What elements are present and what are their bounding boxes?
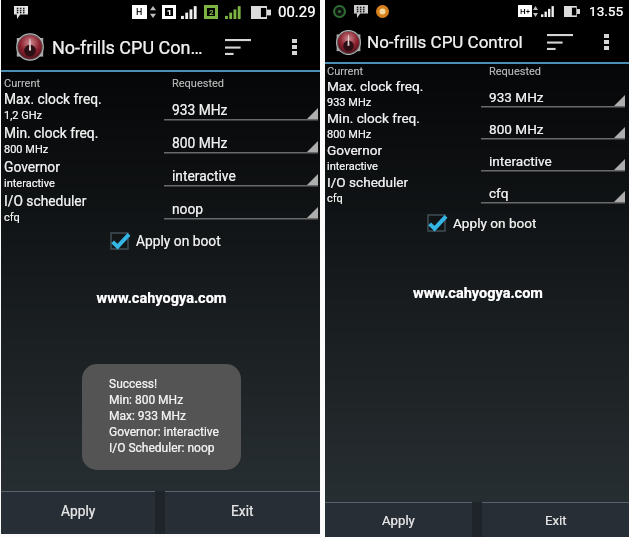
staticText: 13.55 xyxy=(589,3,624,19)
button[interactable]: Sort xyxy=(534,22,586,62)
staticText: Current xyxy=(4,77,41,90)
staticText: interactive xyxy=(172,168,236,184)
button[interactable]: Apply on boot xyxy=(6,230,325,252)
staticText: Governor xyxy=(327,142,383,158)
button[interactable]: More options xyxy=(276,24,312,70)
staticText: No-frills CPU Con… xyxy=(52,37,203,58)
staticText: cfq xyxy=(489,185,509,201)
staticText: Max. clock freq. xyxy=(4,91,102,107)
button[interactable]: Apply xyxy=(1,491,155,534)
staticText: noop xyxy=(172,201,204,217)
staticText: I/O scheduler xyxy=(327,174,409,190)
staticText: 1 xyxy=(167,8,172,16)
staticText: Requested xyxy=(172,77,225,90)
button[interactable]: 933 MHz xyxy=(164,95,318,128)
staticText: No-frills CPU Control xyxy=(367,32,523,52)
staticText: Min. clock freq. xyxy=(4,125,99,141)
staticText: 933 MHz xyxy=(327,96,372,109)
staticText: Success! xyxy=(109,377,158,391)
button[interactable]: 800 MHz xyxy=(164,128,318,161)
button[interactable]: More options xyxy=(588,22,624,62)
staticText: Governor xyxy=(4,159,60,175)
staticText: www.cahyogya.com xyxy=(326,285,629,302)
staticText: Apply on boot xyxy=(453,215,537,231)
staticText: I/O scheduler xyxy=(4,193,87,209)
staticText: Exit xyxy=(231,503,254,519)
button[interactable]: Exit xyxy=(165,491,320,534)
staticText: www.cahyogya.com xyxy=(2,290,321,307)
staticText: 800 MHz xyxy=(489,121,544,137)
staticText: cfq xyxy=(4,211,20,224)
staticText: interactive xyxy=(4,177,55,190)
staticText: Exit xyxy=(545,513,567,528)
staticText: 00.29 xyxy=(278,3,316,21)
staticText: Requested xyxy=(489,65,542,78)
staticText: Governor: interactive xyxy=(109,425,219,439)
button[interactable]: Apply xyxy=(325,502,472,537)
staticText: Current xyxy=(327,65,364,78)
button[interactable]: noop xyxy=(164,194,318,227)
staticText: H xyxy=(136,7,143,18)
staticText: Max: 933 MHz xyxy=(109,409,187,423)
button[interactable]: 800 MHz xyxy=(481,115,625,147)
button[interactable]: cfq xyxy=(481,179,625,211)
staticText: Apply xyxy=(61,503,96,519)
staticText: interactive xyxy=(489,153,552,169)
staticText: cfq xyxy=(327,192,343,205)
staticText: 800 MHz xyxy=(327,128,372,141)
button[interactable]: Apply on boot xyxy=(330,212,629,234)
staticText: 2 xyxy=(209,8,214,16)
staticText: Min. clock freq. xyxy=(327,110,420,126)
button[interactable]: 933 MHz xyxy=(481,83,625,115)
button[interactable]: Sort xyxy=(212,24,264,70)
staticText: Apply on boot xyxy=(136,233,221,249)
staticText: Apply xyxy=(382,513,415,528)
staticText: Min: 800 MHz xyxy=(109,393,184,407)
staticText: H+ xyxy=(520,7,531,16)
staticText: 800 MHz xyxy=(4,143,49,156)
staticText: Max. clock freq. xyxy=(327,78,424,94)
staticText: 800 MHz xyxy=(172,135,228,151)
staticText: I/O Scheduler: noop xyxy=(109,441,215,455)
staticText: 933 MHz xyxy=(489,89,544,105)
staticText: 933 MHz xyxy=(172,102,228,118)
button[interactable]: Exit xyxy=(482,502,629,537)
button[interactable]: interactive xyxy=(164,161,318,194)
button[interactable]: interactive xyxy=(481,147,625,179)
staticText: 1,2 GHz xyxy=(4,109,43,122)
staticText: interactive xyxy=(327,160,378,173)
